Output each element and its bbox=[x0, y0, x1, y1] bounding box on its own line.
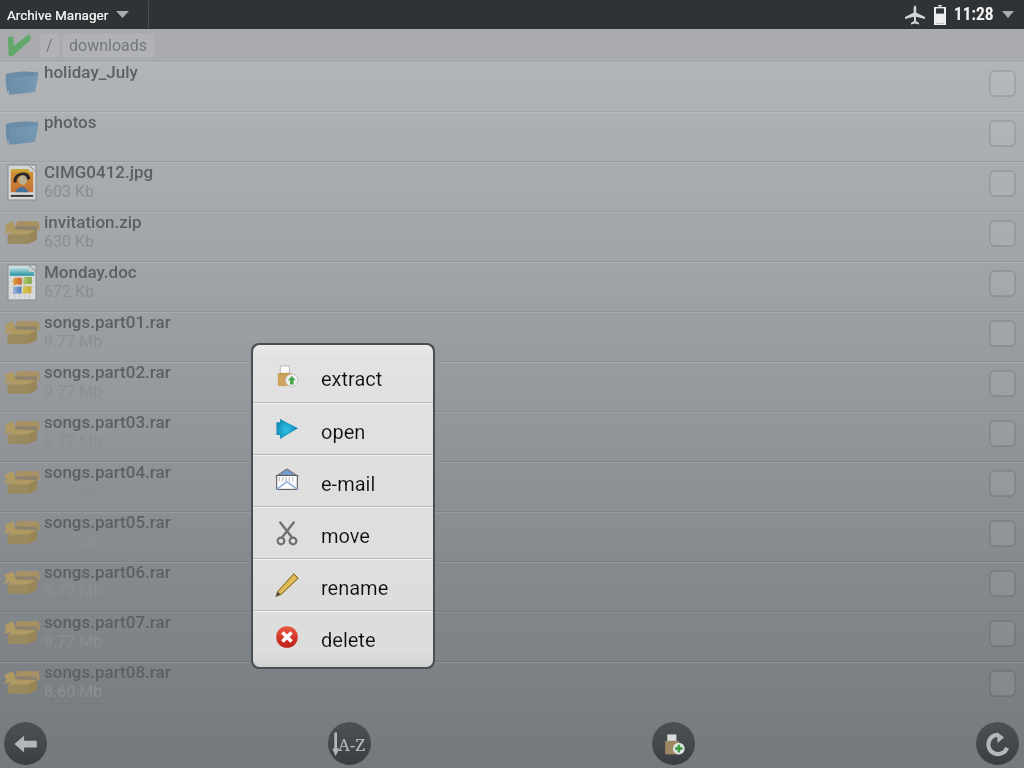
staticText: e-mail bbox=[321, 472, 376, 495]
button[interactable]: Select CIMG0412.jpg bbox=[990, 171, 1015, 196]
button[interactable]: New archive bbox=[652, 722, 695, 765]
button[interactable]: Select holiday_July bbox=[990, 71, 1015, 96]
staticText: delete bbox=[321, 628, 376, 651]
button[interactable]: Monday.doc bbox=[0, 261, 1024, 311]
button[interactable]: Sort A to Z bbox=[328, 722, 371, 765]
staticText: Monday.doc bbox=[44, 262, 137, 282]
button[interactable]: songs.part01.rar bbox=[0, 311, 1024, 361]
button[interactable]: songs.part07.rar bbox=[0, 611, 1024, 661]
staticText: downloads bbox=[69, 36, 148, 55]
staticText: CIMG0412.jpg bbox=[44, 162, 154, 182]
staticText: holiday_July bbox=[44, 62, 138, 82]
button[interactable]: Select songs.part08.rar bbox=[990, 671, 1015, 696]
button[interactable]: CIMG0412.jpg bbox=[0, 161, 1024, 211]
button[interactable]: downloads bbox=[63, 34, 154, 57]
button[interactable]: songs.part05.rar bbox=[0, 511, 1024, 561]
button[interactable]: extract bbox=[253, 350, 433, 402]
staticText: songs.part08.rar bbox=[44, 662, 171, 682]
staticText: open bbox=[321, 420, 366, 443]
button[interactable]: delete bbox=[253, 612, 433, 662]
button[interactable]: songs.part06.rar bbox=[0, 561, 1024, 611]
staticText: songs.part07.rar bbox=[44, 612, 171, 632]
button[interactable]: Archive Manager bbox=[0, 0, 148, 29]
button[interactable]: Select songs.part05.rar bbox=[990, 521, 1015, 546]
staticText: invitation.zip bbox=[44, 212, 142, 232]
staticText: 9.77 Mb bbox=[44, 382, 103, 401]
staticText: A-Z bbox=[338, 733, 366, 756]
staticText: 672 Kb bbox=[44, 282, 94, 301]
button[interactable]: move bbox=[253, 508, 433, 558]
staticText: songs.part01.rar bbox=[44, 312, 171, 332]
staticText: / bbox=[46, 36, 53, 55]
staticText: extract bbox=[321, 367, 383, 390]
button[interactable]: Select songs.part07.rar bbox=[990, 621, 1015, 646]
button[interactable]: Select songs.part01.rar bbox=[990, 321, 1015, 346]
button[interactable]: / bbox=[40, 34, 59, 57]
button[interactable]: invitation.zip bbox=[0, 211, 1024, 261]
staticText: 8.60 Mb bbox=[44, 682, 103, 701]
button[interactable]: songs.part08.rar bbox=[0, 661, 1024, 711]
staticText: rename bbox=[321, 576, 389, 599]
staticText: 630 Kb bbox=[44, 232, 94, 251]
button[interactable]: Select all bbox=[5, 34, 31, 56]
button[interactable]: e-mail bbox=[253, 456, 433, 506]
staticText: photos bbox=[44, 112, 97, 132]
button[interactable]: rename bbox=[253, 560, 433, 610]
staticText: 11:28 bbox=[954, 4, 994, 25]
button[interactable]: Back bbox=[4, 722, 47, 765]
button[interactable]: Select songs.part03.rar bbox=[990, 421, 1015, 446]
button[interactable]: Select Monday.doc bbox=[990, 271, 1015, 296]
button[interactable]: open bbox=[253, 404, 433, 454]
staticText: songs.part04.rar bbox=[44, 462, 171, 482]
button[interactable]: songs.part02.rar bbox=[0, 361, 1024, 411]
staticText: move bbox=[321, 524, 370, 547]
staticText: 9.77 Mb bbox=[44, 632, 103, 651]
button[interactable]: Select photos bbox=[990, 121, 1015, 146]
staticText: 9.77 Mb bbox=[44, 332, 103, 351]
button[interactable]: Select songs.part02.rar bbox=[990, 371, 1015, 396]
button[interactable]: holiday_July bbox=[0, 61, 1024, 111]
button[interactable]: songs.part04.rar bbox=[0, 461, 1024, 511]
button[interactable]: Select invitation.zip bbox=[990, 221, 1015, 246]
staticText: 603 Kb bbox=[44, 182, 94, 201]
staticText: songs.part02.rar bbox=[44, 362, 171, 382]
button[interactable]: Select songs.part06.rar bbox=[990, 571, 1015, 596]
button[interactable]: photos bbox=[0, 111, 1024, 161]
staticText: songs.part03.rar bbox=[44, 412, 171, 432]
staticText: songs.part06.rar bbox=[44, 562, 171, 582]
staticText: Archive Manager bbox=[7, 7, 109, 23]
button[interactable]: Refresh bbox=[976, 722, 1019, 765]
button[interactable]: songs.part03.rar bbox=[0, 411, 1024, 461]
button[interactable]: Select songs.part04.rar bbox=[990, 471, 1015, 496]
staticText: songs.part05.rar bbox=[44, 512, 171, 532]
